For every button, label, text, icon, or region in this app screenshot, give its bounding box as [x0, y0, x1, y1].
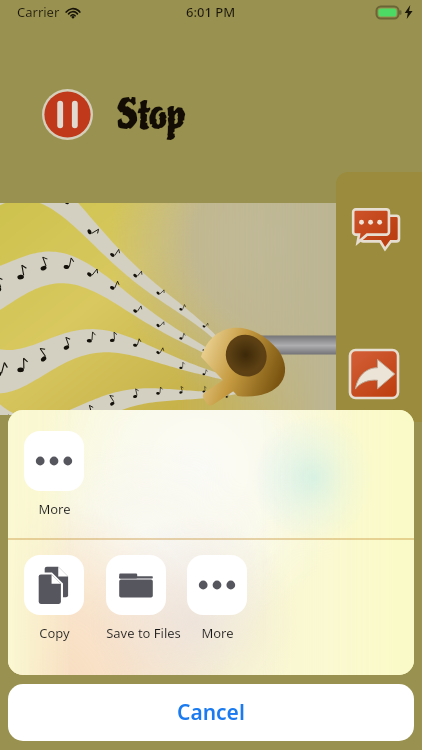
- staticText: Cancel: [177, 698, 245, 727]
- button[interactable]: Cancel: [8, 684, 414, 741]
- staticText: Stop: [117, 89, 186, 141]
- staticText: Copy: [39, 624, 70, 642]
- button[interactable]: More: [24, 431, 84, 518]
- button[interactable]: Save to Files: [106, 555, 166, 642]
- button[interactable]: Stop: [42, 88, 186, 140]
- button[interactable]: Copy: [24, 555, 84, 642]
- staticText: 6:01 PM: [186, 3, 236, 21]
- button[interactable]: Comment: [349, 205, 398, 251]
- staticText: Save to Files: [106, 624, 166, 642]
- button[interactable]: More: [187, 555, 247, 642]
- staticText: More: [38, 500, 71, 518]
- staticText: Carrier: [17, 3, 60, 21]
- button[interactable]: Share: [347, 347, 401, 401]
- staticText: More: [201, 624, 234, 642]
